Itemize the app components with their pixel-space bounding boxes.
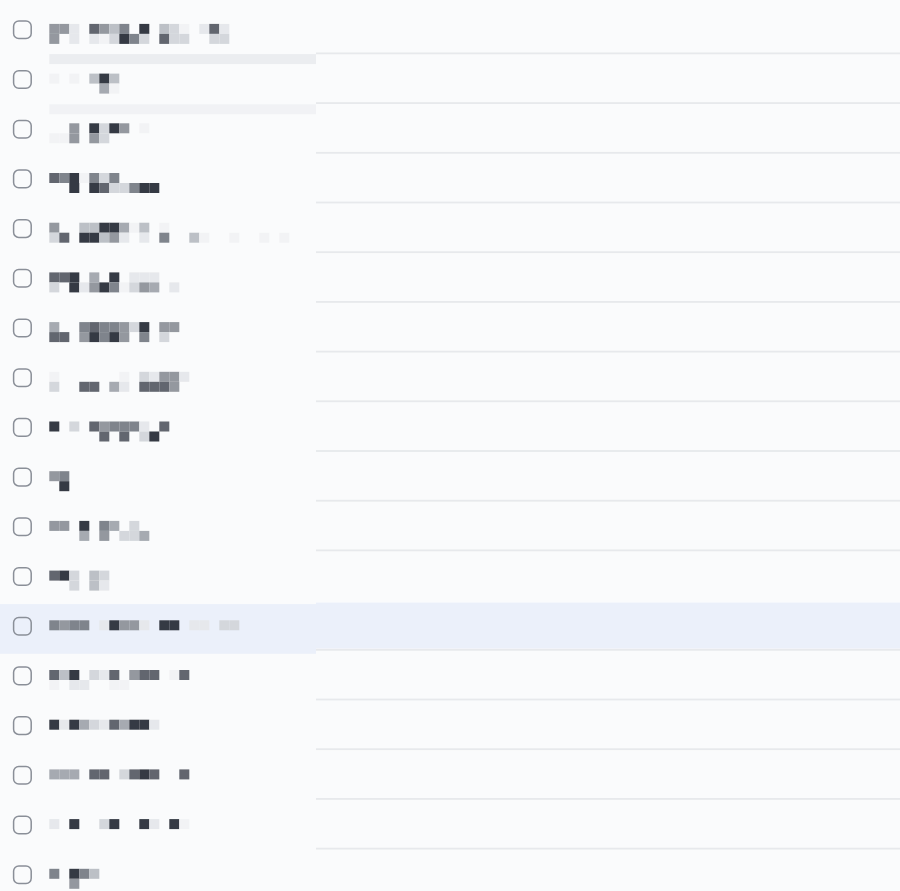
button[interactable]: Message list <box>0 0 900 891</box>
